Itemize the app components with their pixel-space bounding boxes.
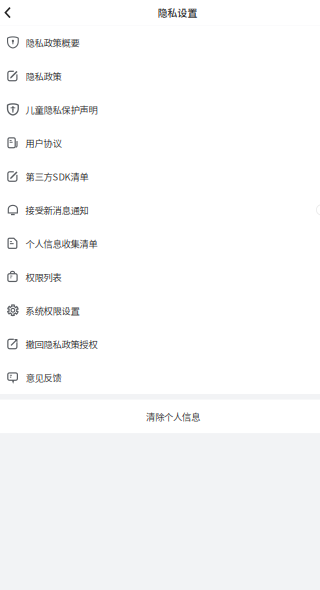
staticText: 权限列表: [25, 270, 61, 284]
button[interactable]: Back: [0, 0, 26, 25]
staticText: 第三方SDK清单: [25, 170, 88, 183]
staticText: 意见反馈: [25, 371, 61, 384]
button[interactable]: 接受新消息通知: [0, 193, 320, 227]
button[interactable]: 意见反馈: [0, 361, 320, 394]
staticText: 系统权限设置: [25, 304, 79, 317]
staticText: 个人信息收集清单: [25, 237, 97, 250]
button[interactable]: 用户协议: [0, 126, 320, 160]
staticText: 隐私政策概要: [25, 36, 79, 49]
button[interactable]: 清除个人信息: [0, 400, 320, 433]
staticText: 接受新消息通知: [25, 203, 88, 217]
staticText: 用户协议: [25, 136, 61, 150]
button[interactable]: 隐私政策概要: [0, 26, 320, 59]
button[interactable]: 儿童隐私保护声明: [0, 93, 320, 126]
button[interactable]: 第三方SDK清单: [0, 160, 320, 193]
staticText: 撤回隐私政策授权: [25, 337, 97, 351]
staticText: 隐私政策: [25, 69, 61, 83]
button[interactable]: 个人信息收集清单: [0, 227, 320, 260]
button[interactable]: 撤回隐私政策授权: [0, 327, 320, 361]
button[interactable]: 系统权限设置: [0, 294, 320, 327]
staticText: 隐私设置: [157, 5, 197, 20]
button[interactable]: 权限列表: [0, 260, 320, 294]
staticText: 清除个人信息: [146, 410, 200, 423]
staticText: 儿童隐私保护声明: [25, 103, 97, 116]
button[interactable]: 隐私政策: [0, 59, 320, 93]
